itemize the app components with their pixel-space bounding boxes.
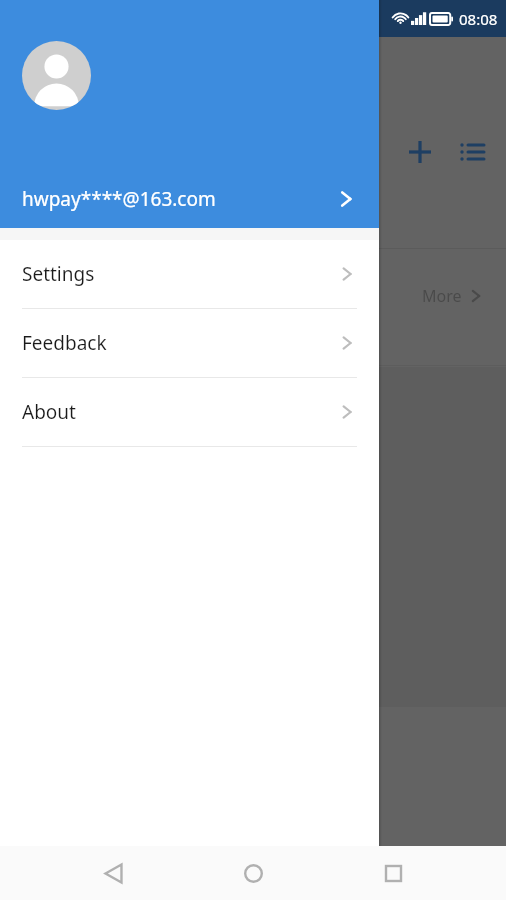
staticText: About	[22, 399, 76, 425]
staticText: Settings	[22, 261, 95, 287]
button[interactable]: Profile photo	[22, 41, 91, 110]
staticText: Feedback	[22, 330, 107, 356]
staticText: 08:08	[459, 9, 498, 29]
button[interactable]: List view	[448, 128, 496, 176]
staticText: hwpay****@163.com	[22, 186, 216, 212]
button[interactable]: hwpay****@163.com	[0, 170, 379, 228]
button[interactable]: Feedback	[0, 309, 379, 377]
button[interactable]: Settings	[0, 240, 379, 308]
button[interactable]: Recent apps	[366, 846, 420, 900]
button[interactable]: About	[0, 378, 379, 446]
button[interactable]: Home	[226, 846, 280, 900]
button[interactable]: More	[0, 275, 506, 317]
button[interactable]: Add	[396, 128, 444, 176]
staticText: More	[422, 285, 462, 307]
button[interactable]: Back	[86, 846, 140, 900]
